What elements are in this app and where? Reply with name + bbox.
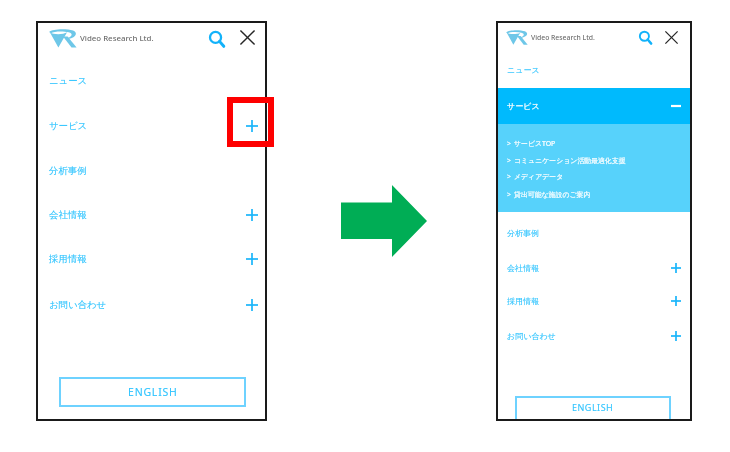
staticText: サービス (507, 101, 540, 111)
button[interactable]: サービス (496, 88, 692, 124)
staticText: ニュース (49, 75, 88, 87)
button[interactable]: Search (639, 31, 653, 45)
staticText: > (507, 190, 511, 199)
staticText: お問い合わせ (49, 299, 107, 311)
button[interactable]: 分析事例 (36, 148, 267, 193)
button[interactable]: > (507, 168, 564, 184)
button[interactable]: 分析事例 (496, 216, 692, 250)
button[interactable]: Close (665, 31, 678, 44)
button[interactable]: 採用情報 (36, 236, 267, 281)
staticText: 会社情報 (507, 263, 539, 273)
button[interactable]: 会社情報 (496, 251, 692, 285)
staticText: メディアデータ (514, 172, 564, 181)
staticText: サービスTOP (514, 139, 556, 148)
staticText: > (507, 172, 511, 181)
staticText: 採用情報 (507, 296, 539, 306)
button[interactable]: Close (240, 30, 255, 45)
button[interactable]: > (507, 152, 626, 168)
staticText: 分析事例 (507, 228, 539, 238)
staticText: 会社情報 (49, 209, 87, 221)
button[interactable]: Search (209, 31, 226, 48)
button[interactable]: お問い合わせ (496, 319, 692, 353)
button[interactable]: お問い合わせ (36, 282, 267, 327)
button[interactable]: > (507, 186, 591, 202)
button[interactable]: ENGLISH (515, 396, 671, 421)
button[interactable]: ニュース (496, 53, 692, 87)
staticText: 採用情報 (49, 253, 87, 265)
staticText: サービス (49, 120, 88, 132)
button[interactable]: > (507, 135, 556, 151)
staticText: お問い合わせ (507, 331, 556, 341)
staticText: > (507, 156, 511, 165)
button[interactable]: 採用情報 (496, 284, 692, 318)
staticText: 分析事例 (49, 165, 87, 177)
button[interactable]: 会社情報 (36, 192, 267, 237)
staticText: コミュニケーション活動最適化支援 (514, 156, 626, 165)
staticText: > (507, 139, 511, 148)
staticText: ENGLISH (128, 385, 178, 399)
staticText: 貸出可能な施設のご案内 (514, 190, 591, 199)
button[interactable]: ENGLISH (59, 377, 246, 407)
staticText: ニュース (507, 65, 540, 75)
button[interactable]: ニュース (36, 58, 267, 103)
button[interactable]: サービス (36, 103, 267, 148)
staticText: Video Research Ltd. (80, 33, 154, 44)
staticText: Video Research Ltd. (531, 33, 595, 42)
staticText: ENGLISH (572, 401, 614, 413)
